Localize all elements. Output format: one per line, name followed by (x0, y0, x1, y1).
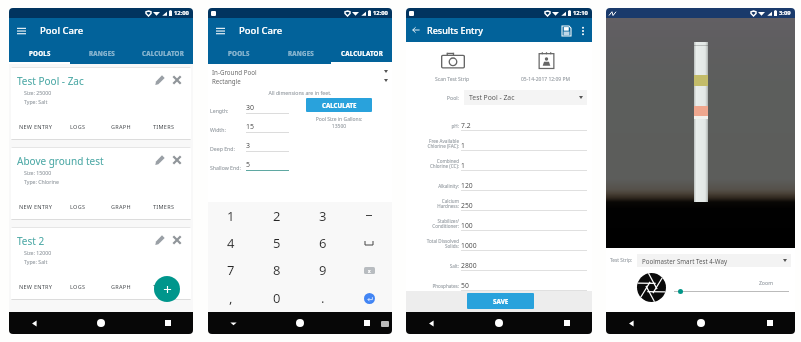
staticText: 2800 (461, 261, 477, 270)
button[interactable]: TIMERS (142, 121, 185, 131)
staticText: Length: (210, 107, 246, 114)
button[interactable]: Delete (171, 74, 182, 86)
button[interactable]: 3 (300, 202, 346, 229)
button[interactable]: Rectangle (212, 76, 388, 85)
button[interactable]: LOGS (57, 121, 99, 131)
button[interactable]: TIMERS (142, 281, 185, 291)
button[interactable]: NEW ENTRY (15, 121, 57, 131)
button[interactable]: More options (577, 25, 588, 36)
staticText: NEW ENTRY (19, 283, 53, 290)
button[interactable]: 5 (254, 229, 300, 256)
staticText: 05-14-2017 12:09 PM (521, 76, 571, 83)
button[interactable]: Recents (763, 316, 777, 330)
button[interactable]: Home (694, 316, 708, 330)
staticText: Test Strip: (610, 257, 633, 264)
button[interactable]: Edit (154, 74, 165, 86)
button[interactable]: TIMERS (142, 201, 185, 211)
button[interactable]: Edit (154, 234, 165, 246)
staticText: 7.2 (461, 121, 471, 130)
button[interactable]: x (346, 256, 392, 284)
button[interactable]: Back (624, 316, 638, 330)
button[interactable]: Test 2 (11, 227, 191, 300)
button[interactable]: RANGES (270, 42, 331, 64)
button[interactable] (346, 202, 392, 229)
staticText: Width: (210, 126, 246, 133)
staticText: NEW ENTRY (19, 123, 53, 130)
staticText: POOLS (228, 49, 250, 57)
button[interactable]: 9 (300, 256, 346, 284)
staticText: Zoom (674, 279, 773, 286)
staticText: 2 (273, 207, 281, 225)
button[interactable]: Keyboard (380, 319, 389, 328)
staticText: Rectangle (212, 77, 241, 85)
button[interactable]: 8 (254, 256, 300, 284)
button[interactable] (346, 229, 392, 256)
button[interactable]: Test Pool - Zac (464, 90, 587, 105)
button[interactable]: LOGS (57, 201, 99, 211)
button[interactable]: Pick date (531, 48, 561, 72)
button[interactable]: NEW ENTRY (15, 281, 57, 291)
button[interactable]: CALCULATOR (132, 42, 193, 64)
button[interactable]: Poolmaster Smart Test 4-Way (637, 254, 791, 267)
staticText: All dimensions are in feet. (208, 89, 392, 96)
button[interactable]: GRAPH (99, 281, 142, 291)
button[interactable]: Scan Test Strip (438, 48, 468, 72)
staticText: 100 (461, 221, 473, 230)
button[interactable]: Above ground test (11, 147, 191, 220)
staticText: Results Entry (427, 24, 484, 36)
button[interactable]: POOLS (208, 42, 270, 64)
button[interactable]: . (300, 284, 346, 312)
staticText: LOGS (70, 283, 86, 290)
button[interactable]: CALCULATOR (331, 42, 392, 64)
button[interactable]: 6 (300, 229, 346, 256)
staticText: GRAPH (111, 283, 131, 290)
button[interactable]: Recents (360, 316, 374, 330)
button[interactable]: Menu (17, 24, 30, 37)
button[interactable]: GRAPH (99, 121, 142, 131)
button[interactable]: Save (560, 24, 573, 37)
button[interactable]: 7 (208, 256, 254, 284)
button[interactable]: LOGS (57, 281, 99, 291)
button[interactable]: Capture (636, 272, 666, 302)
button[interactable]: Back (27, 316, 41, 330)
staticText: Size: 25000 (24, 89, 52, 96)
button[interactable]: Delete (171, 234, 182, 246)
button[interactable]: Edit (154, 154, 165, 166)
staticText: 12:00 (174, 9, 189, 17)
button[interactable]: Home (94, 316, 108, 330)
staticText: In-Ground Pool (212, 68, 257, 76)
button[interactable]: NEW ENTRY (15, 201, 57, 211)
button[interactable]: GRAPH (99, 201, 142, 211)
button[interactable]: Add pool (154, 276, 180, 302)
button[interactable]: Delete (171, 154, 182, 166)
button[interactable]: POOLS (9, 42, 71, 64)
staticText: 4 (227, 234, 235, 252)
staticText: 15 (246, 122, 255, 132)
button[interactable]: Recents (560, 316, 574, 330)
staticText: Scan Test Strip (435, 76, 470, 83)
button[interactable]: Recents (161, 316, 175, 330)
staticText: LOGS (70, 123, 86, 130)
button[interactable]: Home (492, 316, 506, 330)
staticText: pH: (451, 123, 459, 129)
button[interactable]: RANGES (71, 42, 132, 64)
button[interactable]: CALCULATE (306, 98, 372, 112)
staticText: 8 (273, 261, 281, 279)
button[interactable]: Menu (216, 24, 229, 37)
button[interactable]: SAVE (467, 293, 534, 309)
button[interactable]: 0 (254, 284, 300, 312)
staticText: NEW ENTRY (19, 203, 53, 210)
button[interactable]: 4 (208, 229, 254, 256)
button[interactable]: In-Ground Pool (212, 67, 388, 76)
button[interactable]: 2 (254, 202, 300, 229)
button[interactable]: Test Pool - Zac (11, 67, 191, 140)
button[interactable]: 1 (208, 202, 254, 229)
staticText: 30 (246, 103, 255, 113)
button[interactable]: , (208, 284, 254, 312)
button[interactable]: Back (410, 24, 422, 36)
button[interactable]: Home (293, 316, 307, 330)
button[interactable]: Back (226, 316, 240, 330)
button[interactable]: Back (424, 316, 438, 330)
button[interactable] (346, 284, 392, 312)
staticText: Above ground test (17, 154, 104, 168)
